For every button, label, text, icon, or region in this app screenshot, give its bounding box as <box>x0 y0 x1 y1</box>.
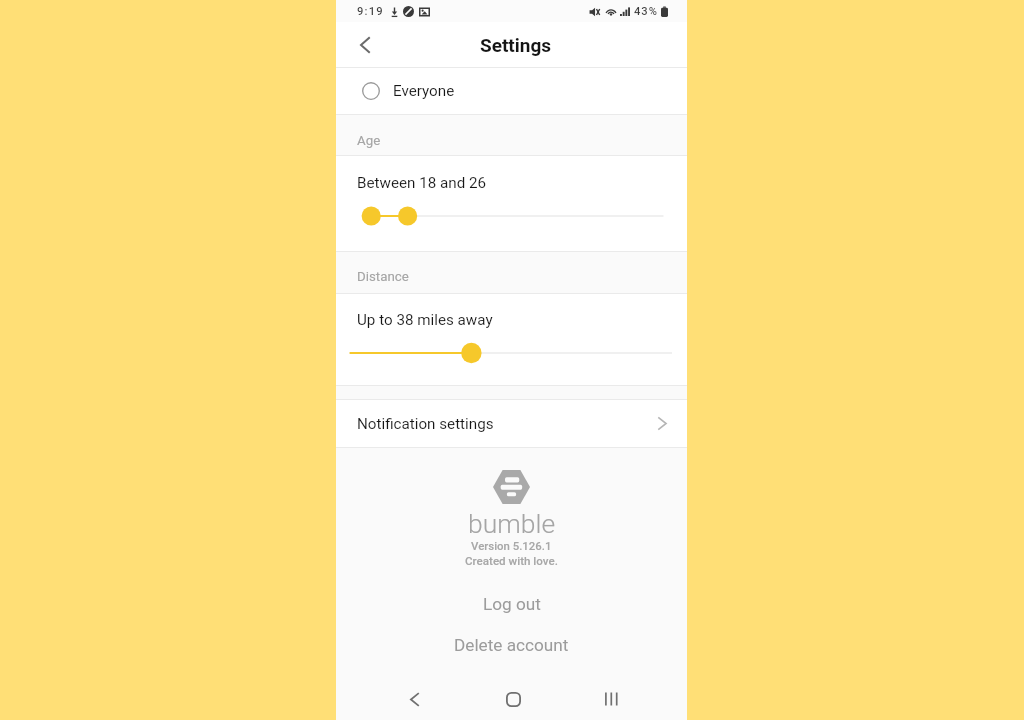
staticText: Log out <box>483 594 541 614</box>
staticText: Age <box>357 133 381 149</box>
staticText: Version 5.126.1 <box>471 539 552 552</box>
button[interactable]: Recent apps <box>591 679 631 719</box>
staticText: 43% <box>634 5 658 18</box>
button[interactable]: Distance slider <box>336 340 687 366</box>
staticText: Created with love. <box>465 554 558 568</box>
staticText: Between 18 and 26 <box>357 174 487 192</box>
button[interactable]: Age range slider <box>336 203 687 229</box>
staticText: Up to 38 miles away <box>357 311 493 329</box>
staticText: Everyone <box>393 82 455 100</box>
button[interactable]: Home <box>493 679 533 719</box>
button[interactable]: Log out <box>336 588 687 620</box>
button[interactable]: Delete account <box>336 629 687 661</box>
button[interactable]: Everyone <box>336 68 687 114</box>
button[interactable]: Notification settings <box>336 400 687 447</box>
staticText: bumble <box>468 508 556 539</box>
staticText: Distance <box>357 269 409 285</box>
button[interactable]: Back <box>394 679 434 719</box>
staticText: Settings <box>480 34 552 56</box>
staticText: Delete account <box>454 635 569 655</box>
button[interactable]: Back <box>343 23 387 67</box>
staticText: Notification settings <box>357 415 494 433</box>
staticText: 9:19 <box>357 5 384 18</box>
